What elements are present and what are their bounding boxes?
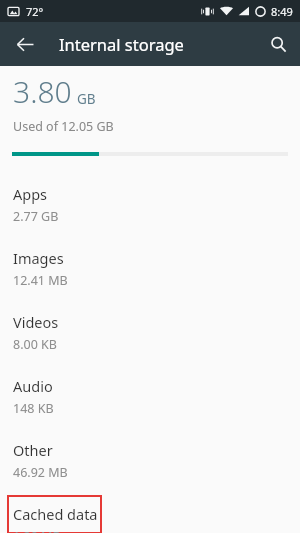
button[interactable]: Images <box>0 236 300 300</box>
button[interactable]: Cached data <box>0 492 300 533</box>
staticText: Other <box>13 440 53 460</box>
staticText: Cached data <box>13 504 98 524</box>
button[interactable]: Audio <box>0 364 300 428</box>
button[interactable]: Apps <box>0 172 300 236</box>
staticText: 1.28 MB <box>13 528 61 533</box>
staticText: 8:49 <box>271 4 293 19</box>
staticText: Videos <box>13 312 59 332</box>
button[interactable]: Back <box>9 28 41 60</box>
staticText: Audio <box>13 376 53 396</box>
button[interactable]: Videos <box>0 300 300 364</box>
staticText: 8.00 KB <box>13 336 57 353</box>
staticText: 46.92 MB <box>13 464 68 481</box>
staticText: 12.41 MB <box>13 272 68 289</box>
staticText: Used of 12.05 GB <box>13 118 114 135</box>
staticText: 2.77 GB <box>13 208 59 225</box>
staticText: 72° <box>26 4 44 19</box>
staticText: Images <box>13 248 64 268</box>
staticText: Internal storage <box>59 33 184 55</box>
staticText: GB <box>77 90 96 108</box>
staticText: 3.80 <box>13 71 72 112</box>
staticText: Apps <box>13 184 48 204</box>
button[interactable]: Other <box>0 428 300 492</box>
staticText: 148 KB <box>13 400 54 417</box>
button[interactable]: Search <box>262 28 294 60</box>
